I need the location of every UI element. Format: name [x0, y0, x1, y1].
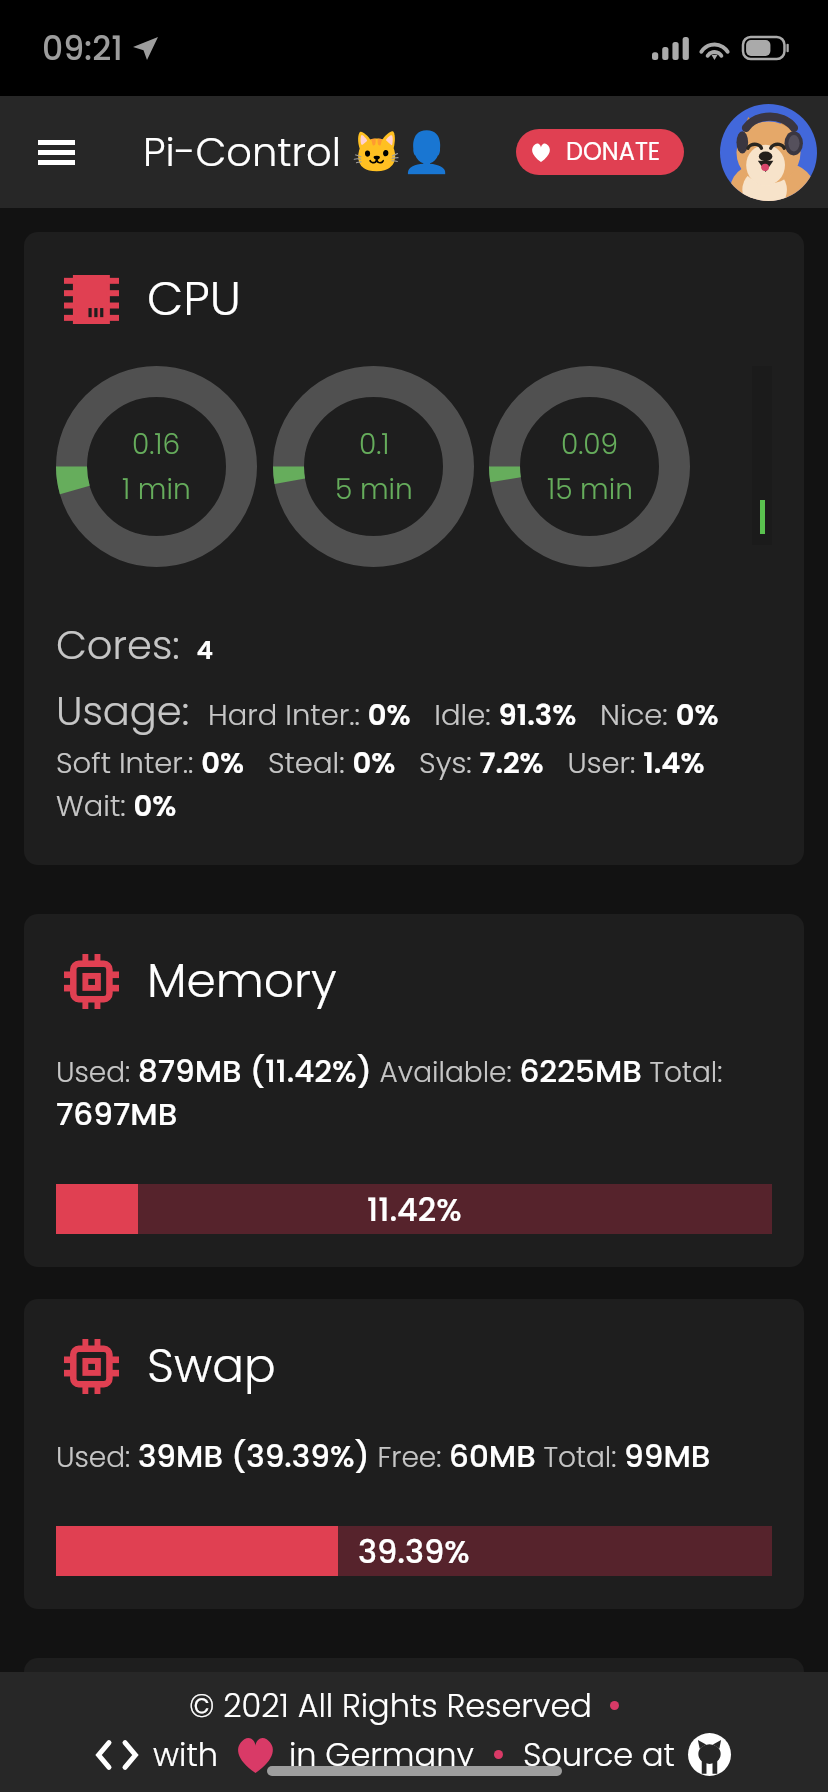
staticText: Used: 879MB (11.42%) Available: 6225MB T…: [56, 1049, 772, 1135]
staticText: Swap: [147, 1333, 276, 1399]
staticText: 11.42%: [367, 1187, 462, 1232]
button[interactable]: DONATE: [516, 129, 684, 175]
staticText: Used: 39MB (39.39%) Free: 60MB Total: 99…: [56, 1434, 711, 1477]
staticText: Usage: Hard Inter.: 0% Idle: 91.3% Nice:…: [56, 683, 772, 826]
staticText: Cores: 4: [56, 617, 214, 673]
staticText: with: [153, 1732, 219, 1777]
staticText: 1 min: [122, 470, 191, 509]
staticText: CPU: [147, 266, 241, 332]
staticText: 0.1: [359, 425, 390, 464]
button[interactable]: Account: [720, 104, 817, 201]
staticText: Memory: [147, 948, 337, 1014]
staticText: 09:21: [42, 25, 123, 71]
staticText: 15 min: [547, 470, 633, 509]
staticText: Source at: [523, 1732, 675, 1777]
staticText: © 2021 All Rights Reserved: [189, 1683, 592, 1728]
staticText: 0.09: [561, 425, 619, 464]
button[interactable]: Source on GitHub: [688, 1733, 731, 1776]
staticText: in Germany: [289, 1732, 474, 1777]
staticText: DONATE: [566, 135, 661, 169]
button[interactable]: Open navigation menu: [21, 117, 91, 187]
staticText: 5 min: [335, 470, 413, 509]
staticText: Pi-Control 🐱👤: [143, 124, 452, 180]
staticText: 39.39%: [358, 1529, 470, 1574]
staticText: 0.16: [132, 425, 181, 464]
button[interactable]: Code: [97, 1741, 137, 1769]
